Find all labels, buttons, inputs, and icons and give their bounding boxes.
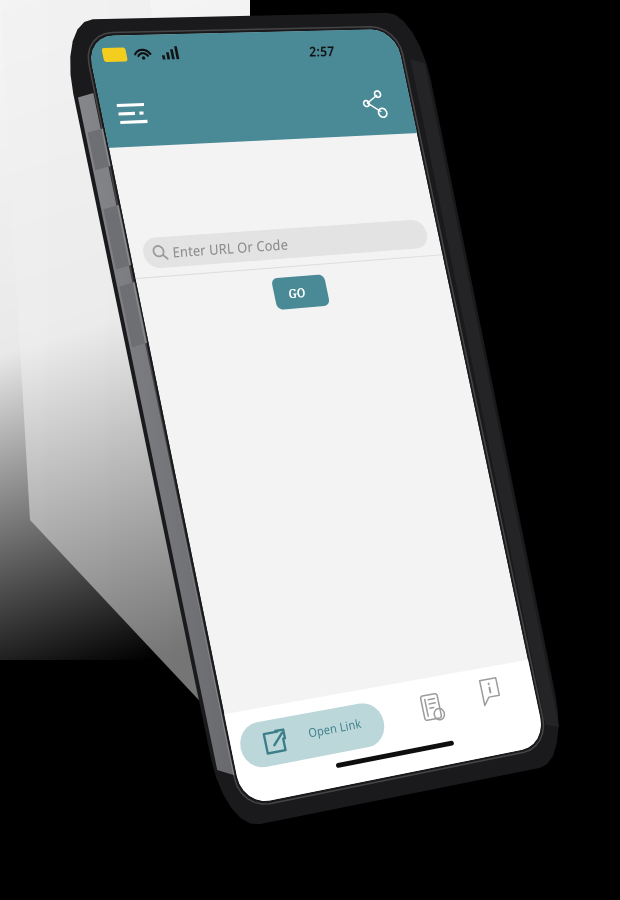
staticText: Open Link (307, 715, 363, 741)
button[interactable] (270, 274, 329, 310)
button[interactable]: Enter URL Or Code (140, 219, 429, 269)
staticText: 2:57 (309, 41, 335, 60)
button[interactable]: Documents (400, 684, 465, 745)
button[interactable]: Share (352, 82, 404, 125)
staticText: GO (288, 284, 306, 302)
button[interactable] (236, 700, 388, 771)
button[interactable]: Info (462, 670, 522, 729)
button[interactable]: Menu (104, 90, 162, 135)
staticText: Enter URL Or Code (172, 234, 289, 261)
